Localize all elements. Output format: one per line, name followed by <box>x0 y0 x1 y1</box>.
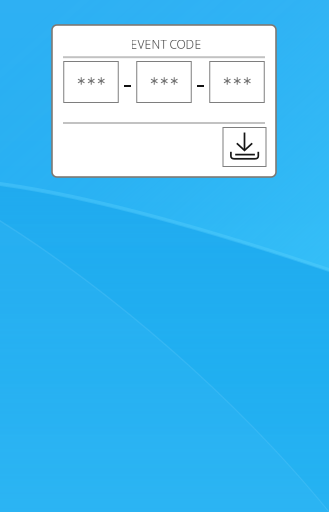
staticText: ∗∗∗ <box>149 74 179 87</box>
staticText: ∗∗∗ <box>76 74 106 87</box>
staticText: EVENT CODE <box>130 36 201 52</box>
staticText: ∗∗∗ <box>222 74 252 87</box>
button[interactable]: Download <box>223 127 266 166</box>
